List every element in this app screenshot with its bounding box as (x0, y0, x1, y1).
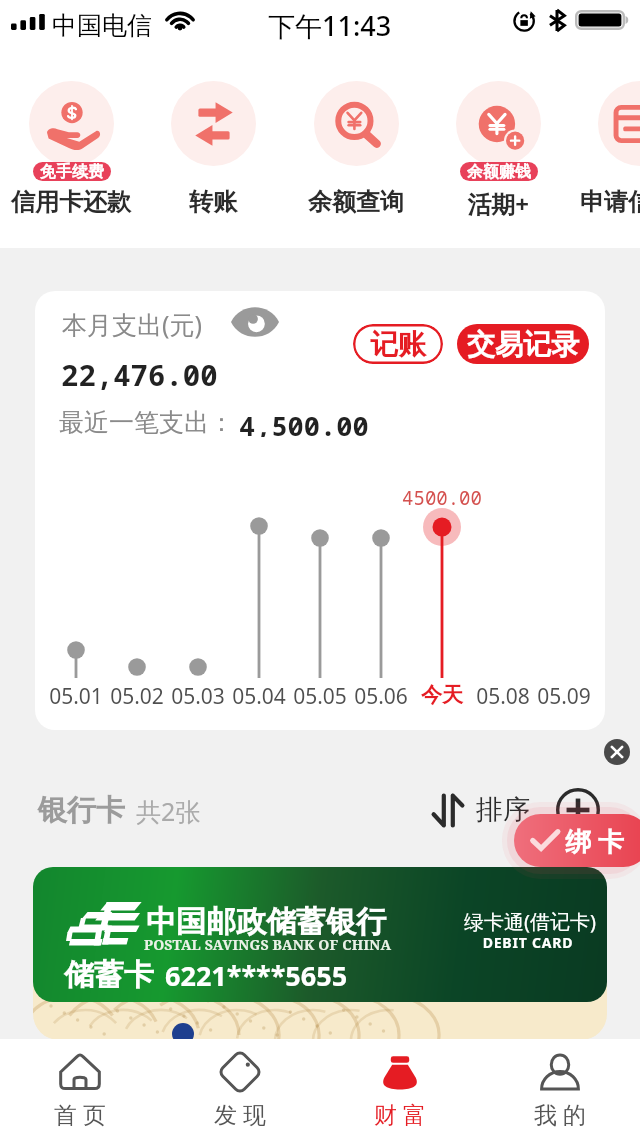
button[interactable]: 财 富 (320, 1039, 480, 1136)
button[interactable]: 中国邮政储蓄银行 (33, 867, 607, 1002)
staticText: 绑 卡 (565, 823, 624, 859)
button[interactable]: 转账 (142, 56, 284, 224)
staticText: 6221****5655 (165, 957, 348, 994)
button[interactable]: 排序 (433, 793, 530, 827)
button[interactable]: 申请信用卡 (569, 56, 640, 224)
staticText: 活期+ (427, 187, 569, 220)
button[interactable]: 余额查询 (285, 56, 427, 224)
staticText: POSTAL SAVINGS BANK OF CHINA (144, 935, 392, 954)
staticText: 22,476.00 (61, 355, 218, 394)
staticText: 中国邮政储蓄银行 (146, 903, 386, 941)
staticText: 绿卡通(借记卡) (464, 908, 607, 935)
staticText: 今天 (412, 682, 472, 708)
button[interactable]: 首 页 (0, 1039, 160, 1136)
button[interactable]: 记账 (353, 324, 443, 364)
button[interactable]: 发 现 (160, 1039, 320, 1136)
staticText: 余额赚钱 (467, 162, 531, 181)
button[interactable]: 我 的 (480, 1039, 640, 1136)
staticText: 财 富 (374, 1098, 426, 1129)
staticText: 05.03 (168, 682, 228, 711)
staticText: 免手续费 (40, 162, 104, 181)
staticText: 记账 (370, 327, 426, 362)
staticText: 中国电信 (52, 10, 152, 41)
button[interactable]: Add card (554, 786, 602, 834)
staticText: 最近一笔支出： (59, 407, 234, 437)
button[interactable]: Close (604, 739, 630, 765)
staticText: 本月支出(元) (62, 307, 203, 341)
staticText: 储蓄卡 (64, 956, 154, 994)
staticText: 4500.00 (397, 485, 487, 511)
staticText: 余额查询 (285, 187, 427, 217)
button[interactable]: 余额赚钱 (427, 56, 569, 224)
staticText: 05.06 (351, 682, 411, 711)
button[interactable] (33, 930, 607, 1040)
staticText: 首 页 (54, 1098, 106, 1129)
staticText: 申请信用卡 (569, 187, 640, 217)
staticText: DEBIT CARD (464, 933, 592, 952)
staticText: 05.08 (473, 682, 533, 711)
staticText: 银行卡 (38, 792, 125, 829)
button[interactable]: 绑 卡 (514, 814, 640, 867)
button[interactable]: Toggle visibility (227, 302, 283, 342)
staticText: 05.09 (534, 682, 594, 711)
staticText: 排序 (476, 793, 530, 827)
staticText: 交易记录 (467, 327, 579, 362)
staticText: 05.04 (229, 682, 289, 711)
staticText: 05.01 (46, 682, 106, 711)
staticText: 4,500.00 (239, 407, 369, 437)
staticText: 信用卡还款 (0, 187, 142, 217)
staticText: 05.02 (107, 682, 167, 711)
staticText: 我 的 (534, 1098, 586, 1129)
staticText: 05.05 (290, 682, 350, 711)
staticText: 发 现 (214, 1098, 266, 1129)
staticText: 共2张 (136, 794, 201, 828)
staticText: 转账 (142, 187, 284, 217)
button[interactable]: 免手续费 (0, 56, 142, 224)
button[interactable]: 交易记录 (457, 324, 589, 364)
staticText: 下午11:43 (268, 7, 392, 44)
